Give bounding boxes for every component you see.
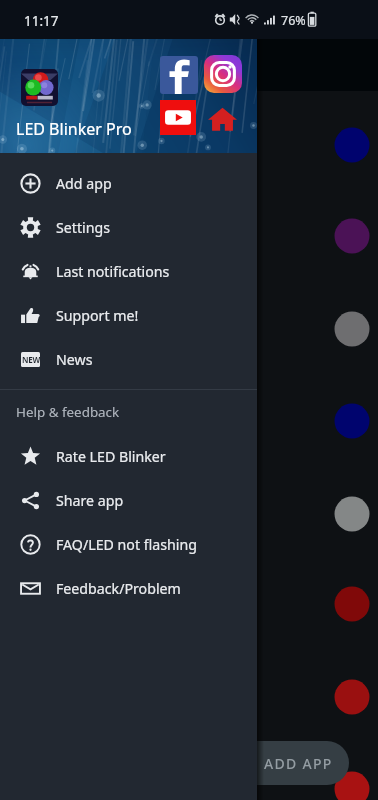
button[interactable]: Settings (0, 205, 257, 249)
button[interactable]: YouTube (160, 100, 196, 135)
staticText: Last notifications (56, 262, 170, 281)
button[interactable]: FAQ/LED not flashing (0, 522, 257, 566)
staticText: ADD APP (264, 754, 333, 773)
button[interactable]: Feedback/Problem (0, 566, 257, 610)
staticText: Rate LED Blinker (56, 447, 166, 466)
button[interactable]: Share app (0, 478, 257, 522)
button[interactable]: ADD APP (217, 741, 349, 785)
staticText: Share app (56, 491, 124, 510)
button[interactable]: NEW (0, 337, 257, 381)
button[interactable]: Home (208, 105, 237, 132)
button[interactable]: Add app (0, 161, 257, 205)
staticText: NEW (22, 354, 40, 365)
button[interactable]: Rate LED Blinker (0, 434, 257, 478)
button[interactable]: Facebook (160, 56, 198, 94)
staticText: LED Blinker Pro (16, 118, 132, 140)
button[interactable]: Last notifications (0, 249, 257, 293)
button[interactable]: Support me! (0, 293, 257, 337)
staticText: FAQ/LED not flashing (56, 535, 197, 554)
staticText: Support me! (56, 306, 139, 325)
staticText: News (56, 350, 93, 369)
button[interactable]: Instagram (204, 55, 242, 93)
staticText: Add app (56, 174, 112, 193)
staticText: 11:17 (24, 12, 59, 30)
staticText: 76% (281, 12, 306, 29)
staticText: Settings (56, 218, 110, 237)
staticText: Feedback/Problem (56, 579, 181, 598)
staticText: Help & feedback (16, 403, 120, 421)
